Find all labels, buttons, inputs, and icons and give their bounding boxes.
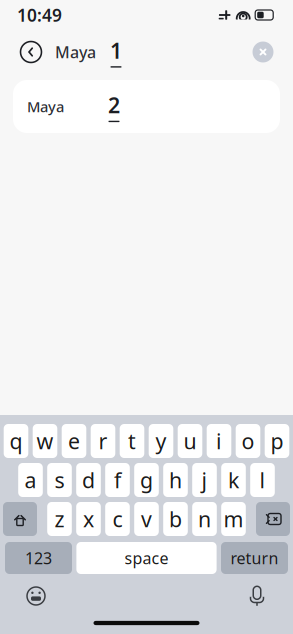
- button[interactable]: Dictate: [241, 580, 273, 612]
- staticText: c: [112, 505, 122, 533]
- button[interactable]: r: [91, 424, 115, 458]
- staticText: b: [169, 505, 182, 533]
- button[interactable]: u: [178, 424, 202, 458]
- button[interactable]: z: [47, 502, 72, 536]
- button[interactable]: Maya: [13, 80, 280, 133]
- staticText: r: [98, 427, 107, 455]
- staticText: u: [183, 427, 196, 455]
- staticText: w: [36, 427, 53, 455]
- button[interactable]: j: [192, 463, 217, 497]
- staticText: m: [223, 505, 243, 533]
- staticText: y: [155, 427, 166, 455]
- staticText: d: [82, 466, 95, 494]
- staticText: v: [141, 505, 152, 533]
- button[interactable]: x: [76, 502, 101, 536]
- button[interactable]: Back: [16, 37, 46, 67]
- button[interactable]: w: [33, 424, 57, 458]
- button[interactable]: space: [76, 542, 217, 574]
- button[interactable]: s: [47, 463, 72, 497]
- button[interactable]: m: [221, 502, 246, 536]
- staticText: 10:49: [17, 3, 62, 26]
- staticText: q: [9, 427, 22, 455]
- button[interactable]: d: [76, 463, 101, 497]
- staticText: k: [228, 466, 239, 494]
- button[interactable]: p: [265, 424, 289, 458]
- button[interactable]: t: [120, 424, 144, 458]
- button[interactable]: o: [236, 424, 260, 458]
- staticText: space: [124, 547, 168, 569]
- button[interactable]: n: [192, 502, 217, 536]
- button[interactable]: a: [18, 463, 43, 497]
- button[interactable]: c: [105, 502, 130, 536]
- button[interactable]: h: [163, 463, 188, 497]
- button[interactable]: 123: [5, 542, 72, 574]
- staticText: z: [54, 505, 64, 533]
- staticText: return: [230, 547, 278, 569]
- button[interactable]: v: [134, 502, 159, 536]
- staticText: 2: [108, 91, 120, 119]
- button[interactable]: Close: [249, 38, 277, 66]
- button[interactable]: y: [149, 424, 173, 458]
- button[interactable]: Shift: [3, 502, 37, 536]
- button[interactable]: f: [105, 463, 130, 497]
- staticText: 1: [110, 36, 122, 65]
- staticText: j: [201, 466, 207, 494]
- staticText: 123: [25, 547, 52, 569]
- button[interactable]: i: [207, 424, 231, 458]
- button[interactable]: e: [62, 424, 86, 458]
- button[interactable]: g: [134, 463, 159, 497]
- staticText: g: [140, 466, 153, 494]
- staticText: Maya: [27, 97, 64, 116]
- staticText: n: [198, 505, 211, 533]
- staticText: e: [68, 427, 80, 455]
- staticText: t: [128, 427, 136, 455]
- button[interactable]: return: [221, 542, 288, 574]
- button[interactable]: l: [250, 463, 275, 497]
- staticText: f: [114, 466, 121, 494]
- staticText: p: [270, 427, 283, 455]
- staticText: l: [259, 466, 265, 494]
- staticText: Maya: [55, 41, 96, 63]
- button[interactable]: q: [4, 424, 28, 458]
- button[interactable]: Delete: [256, 502, 290, 536]
- button[interactable]: b: [163, 502, 188, 536]
- button[interactable]: Emoji: [20, 580, 52, 612]
- staticText: h: [169, 466, 182, 494]
- staticText: s: [54, 466, 64, 494]
- staticText: a: [24, 466, 36, 494]
- button[interactable]: k: [221, 463, 246, 497]
- staticText: x: [83, 505, 94, 533]
- staticText: i: [216, 427, 222, 455]
- staticText: o: [241, 427, 254, 455]
